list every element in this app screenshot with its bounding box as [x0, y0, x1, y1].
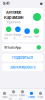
staticText: видео [13, 33, 22, 40]
button[interactable]: Камера [18, 90, 27, 100]
button[interactable]: Звонки [9, 90, 18, 100]
button[interactable]: Ещё [36, 92, 45, 99]
staticText: Ещё [37, 95, 43, 99]
staticText: 9:41 [3, 1, 9, 5]
staticText: звонок [4, 33, 13, 40]
button[interactable]: Чаты [0, 92, 9, 99]
staticText: Карамзин [4, 15, 23, 20]
button[interactable]: звонок [4, 26, 13, 40]
button[interactable]: Заблокировать [2, 63, 43, 71]
button[interactable]: WhatsApp [2, 44, 43, 51]
staticText: чат [34, 34, 39, 38]
staticText: WhatsApp [4, 45, 21, 50]
staticText: Антонов [6, 10, 21, 15]
staticText: Статус [27, 95, 35, 99]
staticText: Чаты [1, 95, 7, 99]
staticText: Заблокировать [9, 65, 35, 69]
button[interactable]: Поделиться [2, 54, 43, 62]
staticText: Звонки [9, 94, 18, 100]
button[interactable]: Статус [27, 92, 36, 99]
staticText: Удалено [6, 20, 20, 24]
staticText: Поделиться [12, 55, 33, 60]
staticText: ▮▮ [40, 2, 42, 5]
button[interactable]: почта [22, 28, 32, 38]
staticText: почта [23, 34, 32, 38]
staticText: Камера [18, 94, 26, 100]
button[interactable]: видео [13, 26, 22, 40]
button[interactable]: чат [32, 28, 41, 38]
